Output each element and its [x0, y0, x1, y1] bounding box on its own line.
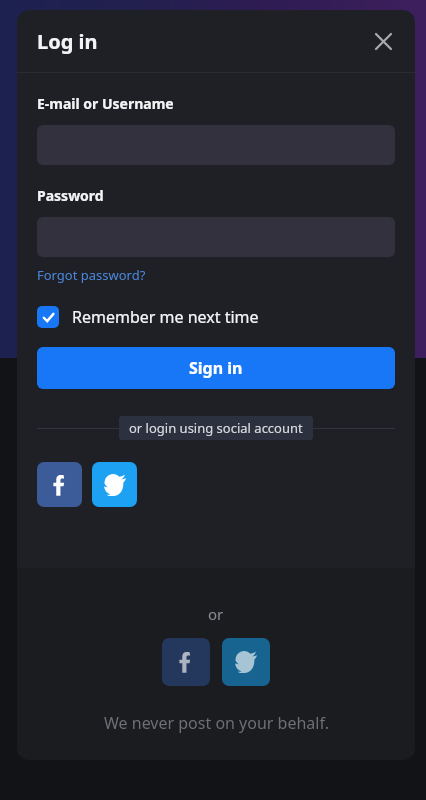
button[interactable]: Close: [363, 21, 403, 61]
button[interactable]: Sign in: [37, 347, 395, 389]
staticText: Log in: [37, 28, 98, 55]
staticText: Remember me next time: [72, 306, 259, 328]
button[interactable]: Log in: [37, 28, 98, 55]
button[interactable]: Remember me next time: [37, 306, 395, 328]
staticText: Sign in: [189, 357, 243, 379]
staticText: Forgot password?: [37, 266, 146, 284]
staticText: E-mail or Username: [37, 94, 174, 113]
staticText: or: [208, 604, 224, 624]
button[interactable]: Forgot password?: [37, 266, 146, 284]
button[interactable]: Sign in with Facebook: [37, 462, 82, 507]
staticText: We never post on your behalf.: [104, 712, 329, 734]
button[interactable]: Facebook login: [162, 638, 210, 686]
staticText: or login using social account: [129, 419, 303, 437]
button[interactable]: Twitter login: [222, 638, 270, 686]
staticText: Password: [37, 186, 104, 205]
button[interactable]: Sign in with Twitter: [92, 462, 137, 507]
